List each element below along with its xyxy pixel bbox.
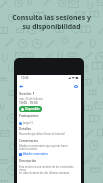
staticText: Descripción (19, 159, 37, 163)
staticText: Detalles (19, 127, 31, 131)
staticText: Consulta las sesiones y su disponibilida… (12, 13, 91, 31)
staticText: Disponible (25, 107, 40, 111)
staticText: Añade un comentario que quieras hacer so… (19, 144, 68, 150)
staticText: Comentarios (19, 139, 38, 143)
button[interactable]: Ayuda (73, 83, 79, 89)
button[interactable]: Disponible (19, 106, 42, 112)
staticText: Añadir comentario (23, 152, 48, 156)
staticText: Participantes (19, 114, 39, 118)
staticText: Jorge H. (23, 121, 34, 125)
staticText: 10:45 (21, 76, 29, 80)
button[interactable]: Añadir comentario (19, 152, 48, 156)
staticText: Esta sesión es una revisión de los conte… (19, 165, 79, 174)
staticText: Sesión 1 (19, 91, 35, 96)
staticText: mar, 25 de febrero (19, 97, 44, 101)
button[interactable]: Atrás (18, 83, 24, 89)
staticText: 10:00 - 10:50 (19, 101, 38, 105)
staticText: Recuerda que debes llevar el material (19, 132, 65, 136)
